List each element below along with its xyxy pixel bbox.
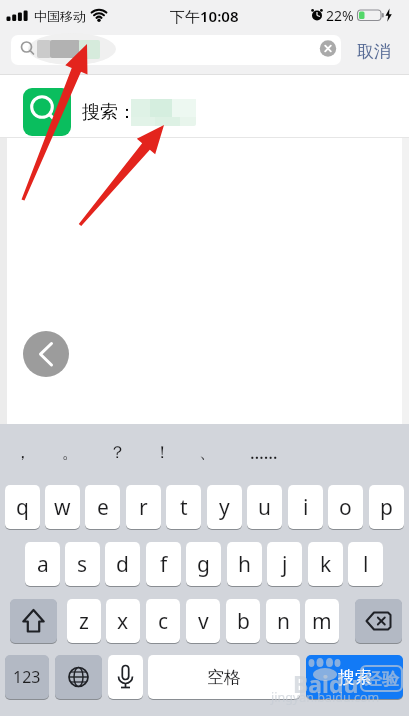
staticText: ？ xyxy=(109,442,126,463)
staticText: q xyxy=(16,493,29,522)
staticText: x xyxy=(117,607,129,636)
button[interactable]: 搜索 xyxy=(306,655,403,699)
button[interactable]: a xyxy=(25,542,60,586)
staticText: 取消 xyxy=(357,41,391,62)
staticText: z xyxy=(79,607,89,636)
staticText: p xyxy=(380,493,393,522)
button[interactable]: x xyxy=(106,599,140,643)
staticText: r xyxy=(139,493,148,522)
staticText: 搜索 xyxy=(338,667,372,688)
staticText: …… xyxy=(250,441,278,464)
staticText: 中国移动 xyxy=(34,8,86,24)
button[interactable] xyxy=(55,655,102,699)
staticText: y xyxy=(219,493,230,522)
staticText: l xyxy=(363,550,369,579)
button[interactable]: k xyxy=(308,542,343,586)
button[interactable]: w xyxy=(45,485,80,529)
button[interactable]: t xyxy=(166,485,201,529)
staticText: d xyxy=(116,550,129,579)
button[interactable]: l xyxy=(348,542,383,586)
button[interactable] xyxy=(108,655,143,699)
button[interactable]: p xyxy=(369,485,404,529)
staticText: 、 xyxy=(199,442,216,463)
button[interactable]: 123 xyxy=(5,655,49,699)
staticText: Baidu xyxy=(293,668,359,698)
button[interactable]: o xyxy=(328,485,363,529)
staticText: 。 xyxy=(62,442,79,463)
staticText: i xyxy=(303,493,309,522)
button[interactable]: h xyxy=(227,542,262,586)
button[interactable]: g xyxy=(186,542,221,586)
button[interactable]: s xyxy=(65,542,100,586)
button[interactable]: i xyxy=(288,485,323,529)
button[interactable]: b xyxy=(226,599,260,643)
button[interactable]: 取消 xyxy=(348,31,400,71)
button[interactable]: n xyxy=(266,599,300,643)
button[interactable]: 搜索： xyxy=(0,75,409,138)
button[interactable]: e xyxy=(85,485,120,529)
button[interactable]: 空格 xyxy=(148,655,300,699)
staticText: b xyxy=(237,607,250,636)
staticText: jingyan.baidu.com xyxy=(271,689,380,706)
staticText: a xyxy=(37,550,49,579)
staticText: 下午10:08 xyxy=(170,6,239,26)
staticText: o xyxy=(339,493,352,522)
staticText: j xyxy=(282,550,288,579)
button[interactable] xyxy=(23,331,69,377)
button[interactable]: z xyxy=(67,599,101,643)
button[interactable]: d xyxy=(105,542,140,586)
staticText: ！ xyxy=(154,442,171,463)
staticText: 123 xyxy=(13,666,41,688)
staticText: c xyxy=(158,607,169,636)
button[interactable]: y xyxy=(207,485,242,529)
staticText: u xyxy=(258,493,271,522)
button[interactable]: v xyxy=(186,599,220,643)
staticText: f xyxy=(160,550,168,579)
staticText: w xyxy=(54,493,71,522)
staticText: t xyxy=(180,493,188,522)
staticText: 空格 xyxy=(207,667,241,688)
staticText: n xyxy=(277,607,290,636)
button[interactable] xyxy=(10,599,57,643)
staticText: h xyxy=(238,550,251,579)
staticText: 经验 xyxy=(365,669,399,690)
button[interactable] xyxy=(11,35,341,65)
button[interactable]: c xyxy=(146,599,180,643)
staticText: 22% xyxy=(326,6,354,25)
staticText: m xyxy=(312,607,332,636)
staticText: v xyxy=(198,607,209,636)
button[interactable]: u xyxy=(247,485,282,529)
button[interactable]: r xyxy=(126,485,161,529)
staticText: e xyxy=(97,493,109,522)
staticText: g xyxy=(197,550,210,579)
staticText: ， xyxy=(14,442,31,463)
button[interactable] xyxy=(355,599,402,643)
staticText: s xyxy=(77,550,88,579)
staticText: 搜索： xyxy=(82,101,136,124)
button[interactable]: m xyxy=(305,599,339,643)
staticText: k xyxy=(320,550,332,579)
button[interactable]: q xyxy=(5,485,40,529)
button[interactable]: j xyxy=(267,542,302,586)
button[interactable]: f xyxy=(146,542,181,586)
